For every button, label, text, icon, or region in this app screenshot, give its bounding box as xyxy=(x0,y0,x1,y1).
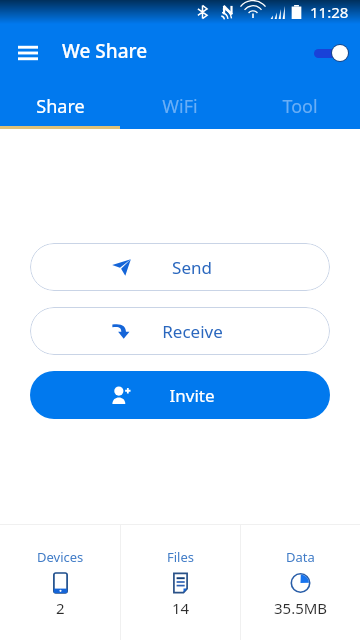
staticText: Receive xyxy=(162,320,223,343)
staticText: WiFi xyxy=(162,94,198,119)
button[interactable]: Open navigation menu xyxy=(8,31,48,71)
button[interactable]: Files xyxy=(121,525,240,640)
staticText: Data xyxy=(286,548,315,566)
staticText: 11:28 xyxy=(310,2,349,22)
button[interactable]: Devices xyxy=(0,525,120,640)
staticText: Invite xyxy=(169,384,215,407)
button[interactable]: Send xyxy=(30,243,330,291)
staticText: Send xyxy=(172,256,212,279)
button[interactable]: Invite xyxy=(30,371,330,419)
button[interactable]: WiFi xyxy=(120,77,240,129)
staticText: Tool xyxy=(282,94,318,119)
staticText: 35.5MB xyxy=(274,598,328,618)
staticText: 14 xyxy=(172,598,190,618)
staticText: Share xyxy=(36,94,85,119)
button[interactable]: Share xyxy=(0,77,120,129)
staticText: We Share xyxy=(62,38,148,64)
staticText: Files xyxy=(167,548,195,566)
staticText: 2 xyxy=(56,598,65,618)
button[interactable]: Receive xyxy=(30,307,330,355)
button[interactable]: Tool xyxy=(240,77,360,129)
button[interactable]: Toggle sharing on xyxy=(306,35,350,67)
button[interactable]: Data xyxy=(241,525,360,640)
staticText: Devices xyxy=(37,548,84,566)
